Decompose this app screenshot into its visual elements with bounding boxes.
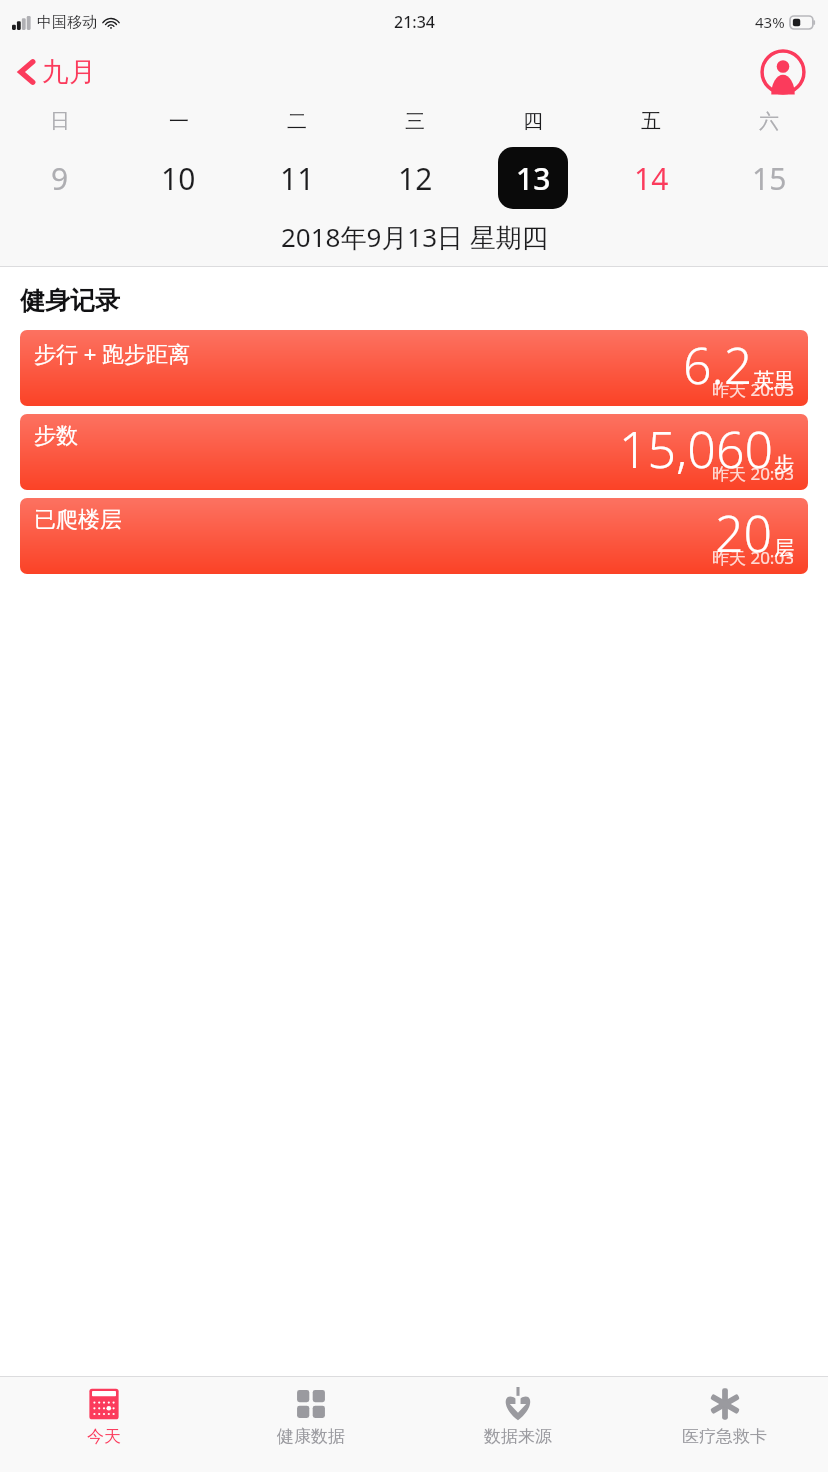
staticText: 层: [774, 536, 794, 561]
staticText: 昨天 20:03: [712, 462, 794, 485]
staticText: 13: [516, 158, 551, 199]
staticText: 43%: [755, 12, 785, 32]
staticText: 一: [169, 109, 189, 134]
staticText: 数据来源: [484, 1426, 552, 1447]
staticText: 12: [398, 158, 433, 199]
staticText: 已爬楼层: [34, 506, 122, 534]
button[interactable]: 步行 + 跑步距离: [20, 330, 808, 406]
staticText: 九月: [42, 55, 96, 89]
button[interactable]: 12: [356, 142, 474, 214]
staticText: 今天: [87, 1426, 121, 1447]
staticText: 昨天 20:03: [712, 546, 794, 569]
staticText: 9: [51, 158, 69, 199]
button[interactable]: 11: [238, 142, 356, 214]
staticText: 四: [523, 109, 543, 134]
staticText: 6.2: [683, 331, 753, 399]
staticText: 15: [752, 158, 787, 199]
button[interactable]: 15: [710, 142, 828, 214]
button[interactable]: 医疗急救卡: [621, 1377, 828, 1472]
staticText: 15,060: [619, 415, 773, 483]
button[interactable]: 步数: [20, 414, 808, 490]
staticText: 20: [715, 499, 773, 567]
staticText: 三: [405, 109, 425, 134]
staticText: 医疗急救卡: [682, 1426, 767, 1447]
staticText: 14: [634, 158, 669, 199]
staticText: 健康数据: [277, 1426, 345, 1447]
button[interactable]: 数据来源: [414, 1377, 621, 1472]
button[interactable]: 10: [119, 142, 238, 214]
staticText: 健身记录: [20, 285, 120, 316]
button[interactable]: 13: [474, 142, 592, 214]
button[interactable]: 14: [592, 142, 710, 214]
staticText: 日: [50, 109, 70, 134]
staticText: 11: [280, 158, 315, 199]
staticText: 二: [287, 109, 307, 134]
button[interactable]: 今天: [0, 1377, 207, 1472]
button[interactable]: 9: [0, 142, 119, 214]
button[interactable]: Profile: [760, 49, 806, 95]
staticText: 10: [161, 158, 196, 199]
staticText: 21:34: [394, 11, 435, 33]
staticText: 步行 + 跑步距离: [34, 338, 191, 368]
staticText: 五: [641, 109, 661, 134]
button[interactable]: 九月: [14, 51, 100, 93]
staticText: 2018年9月13日 星期四: [281, 219, 548, 255]
staticText: 步数: [34, 422, 78, 450]
staticText: 中国移动: [37, 13, 97, 32]
button[interactable]: 健康数据: [207, 1377, 414, 1472]
button[interactable]: 已爬楼层: [20, 498, 808, 574]
staticText: 步: [774, 452, 794, 477]
staticText: 六: [759, 109, 779, 134]
staticText: 昨天 20:03: [712, 378, 794, 401]
staticText: 英里: [754, 368, 794, 393]
